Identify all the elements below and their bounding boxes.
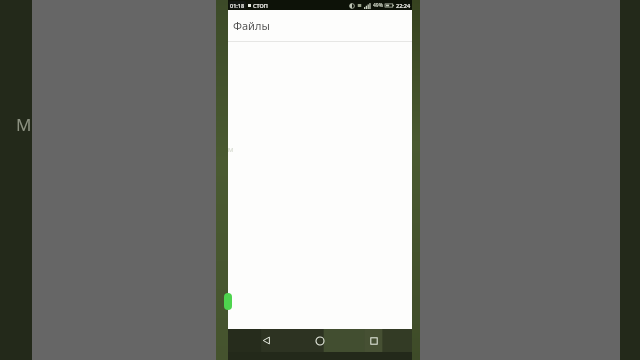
staticText: 01:18: [230, 2, 245, 9]
staticText: 22:24: [396, 2, 411, 9]
button[interactable]: Back: [250, 329, 282, 352]
button[interactable]: Recent apps: [358, 329, 390, 352]
staticText: СТОП: [253, 2, 268, 9]
button[interactable]: Home: [304, 329, 336, 352]
button[interactable]: Файлы: [228, 10, 412, 41]
staticText: M: [228, 146, 234, 154]
staticText: Файлы: [233, 18, 270, 33]
button[interactable]: Add: [224, 293, 232, 310]
staticText: M: [16, 113, 32, 136]
staticText: 49%: [373, 2, 383, 9]
